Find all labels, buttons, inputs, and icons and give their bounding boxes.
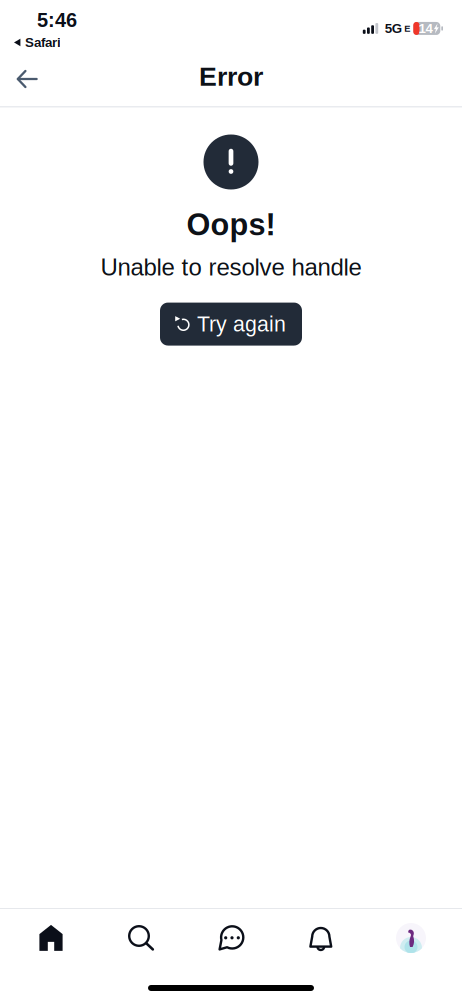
staticText: E: [404, 23, 410, 34]
staticText: Error: [199, 62, 263, 91]
staticText: Safari: [25, 35, 61, 50]
button[interactable]: Back: [0, 56, 54, 102]
button[interactable]: Chat: [186, 910, 276, 966]
staticText: 5:46: [37, 9, 77, 31]
button[interactable]: Search: [96, 910, 186, 966]
button[interactable]: Profile: [366, 910, 456, 966]
staticText: 14: [418, 21, 432, 36]
staticText: 5G: [385, 21, 402, 36]
staticText: Unable to resolve handle: [100, 254, 361, 281]
button[interactable]: Try again: [160, 303, 302, 346]
button[interactable]: Notifications: [276, 910, 366, 966]
staticText: Try again: [197, 312, 286, 336]
staticText: Oops!: [186, 207, 275, 242]
button[interactable]: Home: [6, 910, 96, 966]
